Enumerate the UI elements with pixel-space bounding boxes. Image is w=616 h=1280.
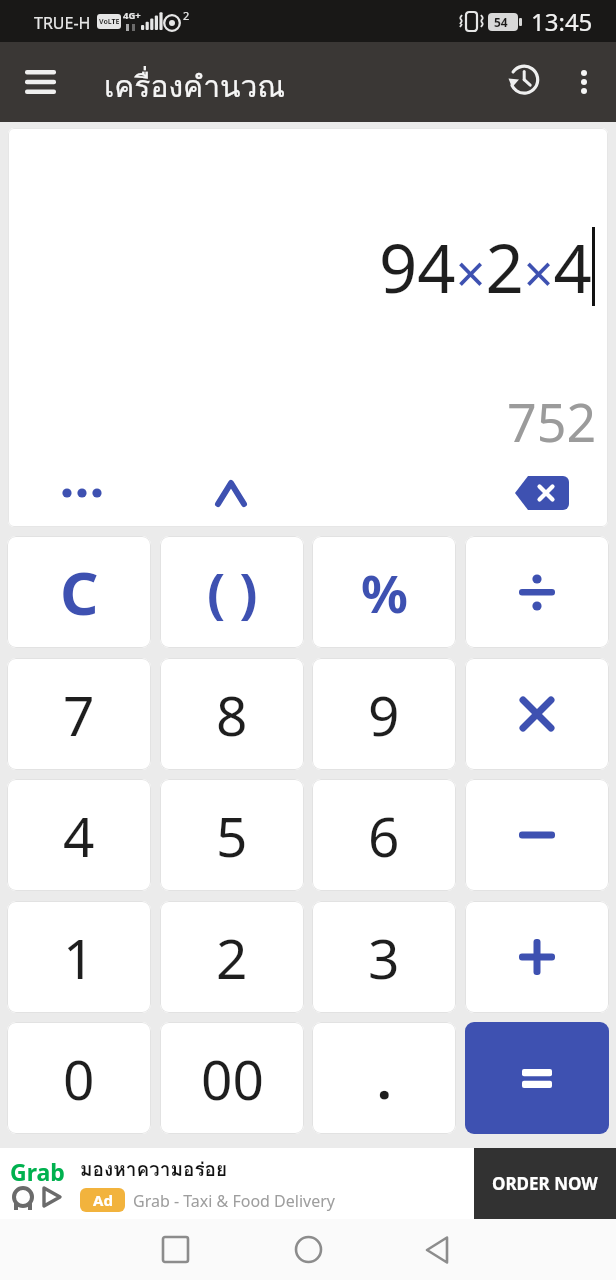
- button[interactable]: 8: [160, 658, 304, 770]
- button[interactable]: [278, 1219, 338, 1280]
- staticText: 6: [368, 798, 400, 873]
- staticText: 00: [201, 1041, 264, 1116]
- button[interactable]: %: [312, 536, 456, 648]
- staticText: 4: [63, 798, 95, 873]
- button[interactable]: [145, 1219, 205, 1280]
- button[interactable]: 00: [160, 1022, 304, 1134]
- button[interactable]: [52, 463, 112, 523]
- staticText: TRUE-H: [34, 12, 91, 34]
- button[interactable]: 7: [7, 658, 151, 770]
- staticText: 13:45: [531, 5, 593, 38]
- staticText: 752: [507, 386, 597, 457]
- staticText: 54: [494, 14, 508, 30]
- staticText: .: [377, 1043, 392, 1114]
- staticText: 94×2×4: [379, 221, 592, 312]
- button[interactable]: [0, 42, 80, 122]
- staticText: ORDER NOW: [492, 1172, 598, 1195]
- staticText: Grab - Taxi & Food Delivery: [133, 1190, 335, 1212]
- staticText: C: [60, 551, 99, 633]
- button[interactable]: [465, 1022, 609, 1134]
- button[interactable]: [500, 463, 584, 523]
- button[interactable]: 3: [312, 901, 456, 1013]
- button[interactable]: [494, 52, 554, 112]
- button[interactable]: C: [7, 536, 151, 648]
- button[interactable]: ORDER NOW: [474, 1148, 616, 1219]
- staticText: 2: [216, 920, 248, 995]
- staticText: 1: [63, 920, 95, 995]
- staticText: 7: [63, 677, 95, 752]
- staticText: 3: [368, 920, 400, 995]
- button[interactable]: 6: [312, 779, 456, 891]
- button[interactable]: [556, 52, 612, 112]
- staticText: 2: [183, 8, 190, 23]
- staticText: %: [361, 557, 408, 628]
- button[interactable]: 0: [7, 1022, 151, 1134]
- staticText: 8: [216, 677, 248, 752]
- button[interactable]: [201, 463, 261, 523]
- staticText: ( ): [207, 555, 258, 629]
- button[interactable]: 5: [160, 779, 304, 891]
- staticText: 9: [368, 677, 400, 752]
- staticText: Ad: [93, 1190, 113, 1210]
- button[interactable]: [407, 1219, 467, 1280]
- button[interactable]: [465, 536, 609, 648]
- button[interactable]: 1: [7, 901, 151, 1013]
- button[interactable]: Grab: [0, 1148, 616, 1219]
- button[interactable]: 2: [160, 901, 304, 1013]
- staticText: Grab: [10, 1156, 65, 1187]
- button[interactable]: [465, 658, 609, 770]
- staticText: 0: [63, 1041, 95, 1116]
- staticText: 4G+: [123, 9, 141, 22]
- button[interactable]: 4: [7, 779, 151, 891]
- staticText: 5: [216, 798, 248, 873]
- button[interactable]: ( ): [160, 536, 304, 648]
- button[interactable]: [465, 901, 609, 1013]
- button[interactable]: .: [312, 1022, 456, 1134]
- staticText: มองหาความอร่อย: [80, 1154, 228, 1184]
- button[interactable]: [465, 779, 609, 891]
- staticText: เครื่องคำนวณ: [104, 63, 286, 111]
- staticText: VoLTE: [99, 17, 120, 27]
- button[interactable]: 9: [312, 658, 456, 770]
